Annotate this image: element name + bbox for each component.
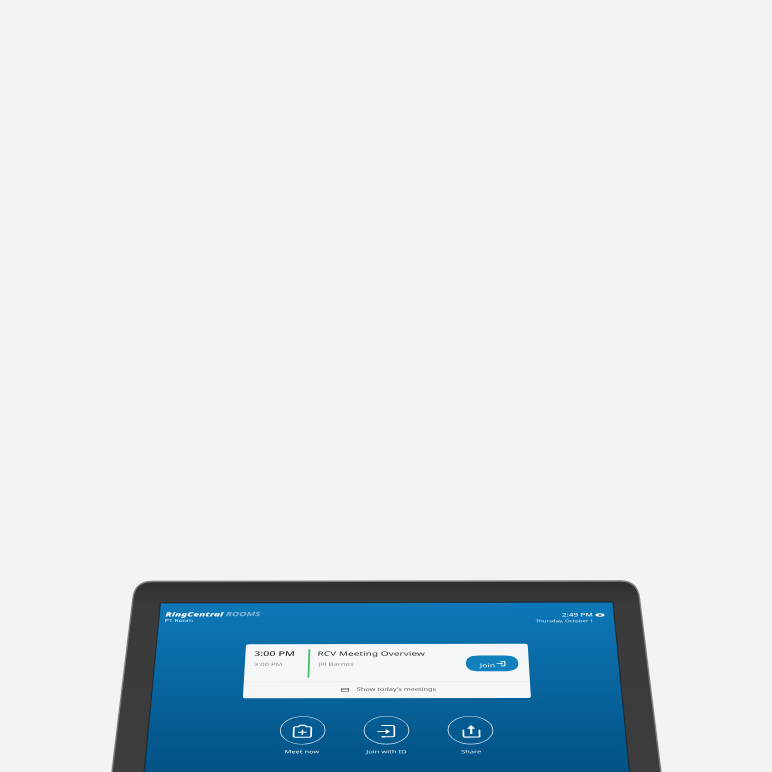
button[interactable]: RingCentral Rooms tablet display: [0, 0, 772, 772]
